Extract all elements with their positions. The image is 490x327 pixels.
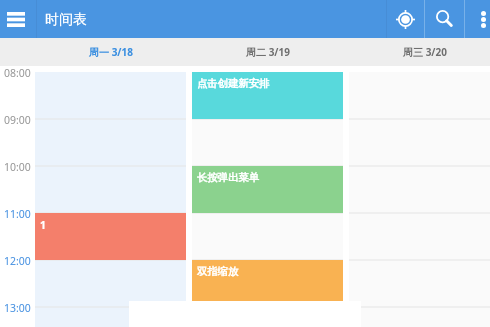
staticText: 12:00: [4, 254, 31, 268]
staticText: 13:00: [4, 301, 31, 315]
staticText: 11:00: [4, 207, 31, 221]
button[interactable]: 1: [35, 213, 186, 260]
staticText: 10:00: [4, 160, 31, 174]
staticText: 09:00: [4, 113, 31, 127]
staticText: 周二 3/19: [246, 45, 290, 59]
button[interactable]: More options: [464, 0, 490, 38]
staticText: 双指缩放: [197, 265, 239, 278]
button[interactable]: 双指缩放: [192, 260, 343, 307]
button[interactable]: 周一 3/18: [35, 38, 186, 66]
button[interactable]: 点击创建新安排: [192, 72, 343, 119]
button[interactable]: Menu: [0, 0, 36, 38]
staticText: 周一 3/18: [89, 45, 133, 59]
button[interactable]: Search: [424, 0, 464, 38]
staticText: 点击创建新安排: [197, 77, 270, 90]
staticText: 1: [40, 218, 46, 232]
staticText: 时间表: [45, 11, 87, 29]
button[interactable]: 周二 3/19: [192, 38, 343, 66]
button[interactable]: 长按弹出菜单: [192, 166, 343, 213]
button[interactable]: 周三 3/20: [349, 38, 490, 66]
staticText: 周三 3/20: [403, 45, 447, 59]
staticText: 长按弹出菜单: [197, 171, 259, 184]
staticText: 08:00: [4, 66, 31, 80]
button[interactable]: My location: [386, 0, 425, 38]
